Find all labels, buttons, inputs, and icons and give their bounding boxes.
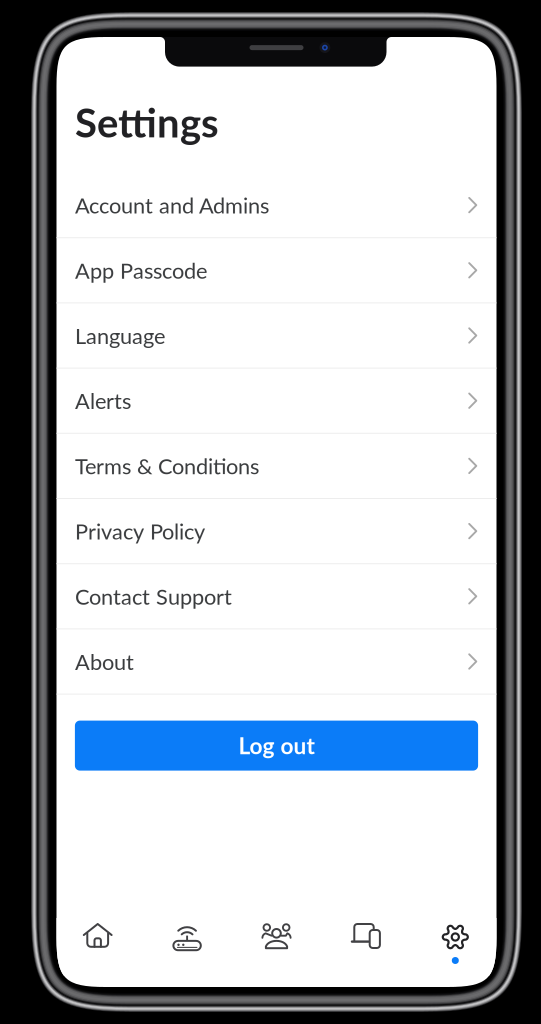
button[interactable]: About — [56, 629, 496, 695]
button[interactable]: Contact Support — [56, 564, 496, 629]
button[interactable]: Alerts — [56, 369, 496, 434]
staticText: About — [75, 648, 134, 675]
staticText: Contact Support — [75, 583, 232, 609]
staticText: App Passcode — [75, 257, 207, 283]
button[interactable]: Home — [53, 918, 142, 976]
button[interactable]: Network — [142, 918, 232, 976]
button[interactable]: Account and Admins — [56, 173, 496, 238]
staticText: Language — [75, 322, 165, 349]
staticText: Settings — [75, 98, 219, 146]
button[interactable]: Devices — [321, 918, 411, 976]
button[interactable]: Terms & Conditions — [56, 434, 496, 499]
staticText: Account and Admins — [75, 192, 269, 218]
button[interactable]: Settings — [411, 918, 500, 976]
button[interactable]: Privacy Policy — [56, 499, 496, 564]
staticText: Terms & Conditions — [75, 453, 259, 479]
button[interactable]: App Passcode — [56, 238, 496, 303]
button[interactable]: People — [232, 918, 321, 976]
button[interactable]: Log out — [75, 721, 478, 771]
button[interactable]: Language — [56, 303, 496, 369]
staticText: Log out — [238, 732, 314, 759]
staticText: Alerts — [75, 388, 131, 414]
staticText: Privacy Policy — [75, 518, 205, 544]
